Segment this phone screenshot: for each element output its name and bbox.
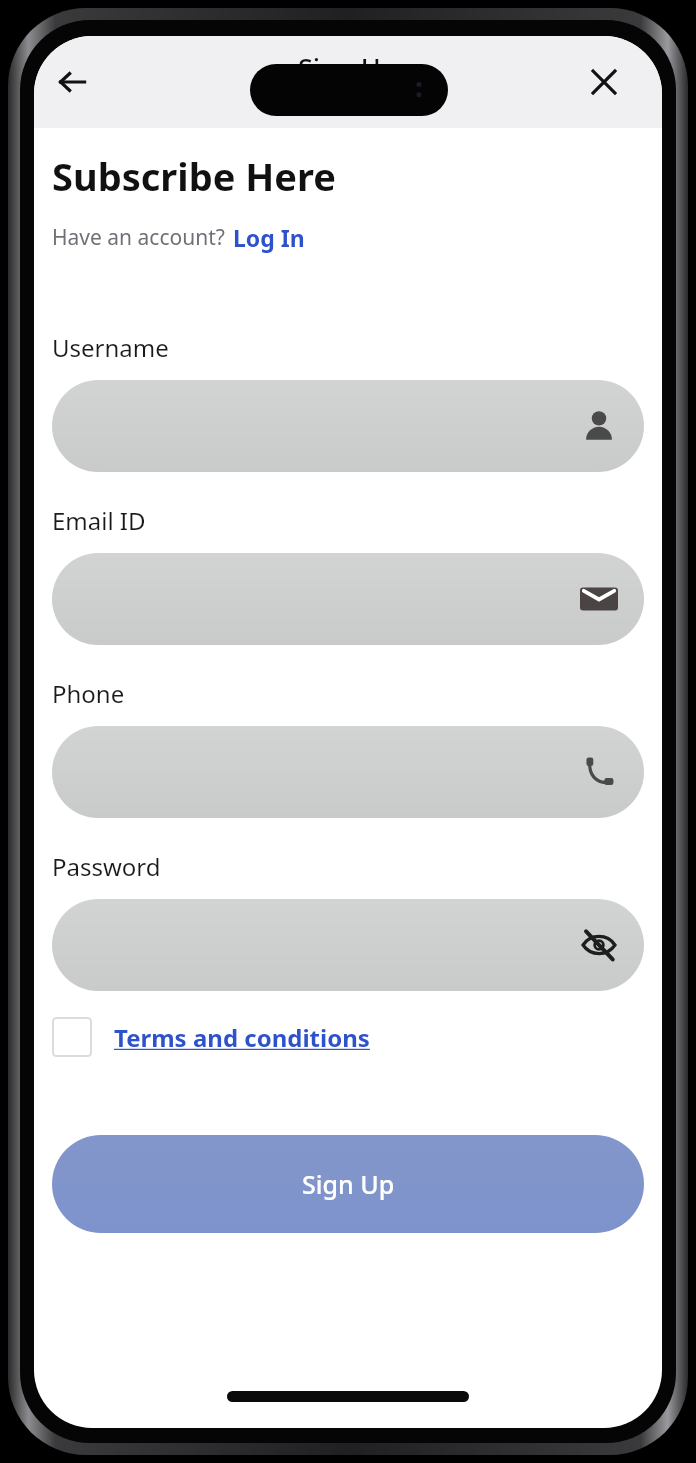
button[interactable]: Close [576, 54, 632, 110]
other: Phone [580, 753, 618, 791]
staticText: Log In [233, 222, 305, 253]
staticText: Password [52, 850, 161, 883]
button[interactable]: Sign Up [52, 1135, 644, 1233]
staticText: Have an account? [52, 223, 225, 252]
other: Show password [580, 926, 618, 964]
button[interactable]: Email [52, 553, 644, 645]
staticText: Phone [52, 677, 125, 710]
button[interactable]: Log In [233, 222, 305, 253]
other: Email [580, 580, 618, 618]
staticText: Terms and conditions [114, 1021, 370, 1054]
button[interactable]: Show password [52, 899, 644, 991]
staticText: Username [52, 331, 169, 364]
staticText: Sign Up [302, 1167, 395, 1201]
other: Username [580, 407, 618, 445]
staticText: Email ID [52, 504, 146, 537]
staticText: Subscribe Here [52, 150, 336, 202]
button[interactable]: Back [44, 54, 100, 110]
button[interactable]: Username [52, 380, 644, 472]
button[interactable]: Terms and conditions [52, 1017, 370, 1057]
staticText: Sign Up [298, 50, 398, 87]
button[interactable]: Phone [52, 726, 644, 818]
